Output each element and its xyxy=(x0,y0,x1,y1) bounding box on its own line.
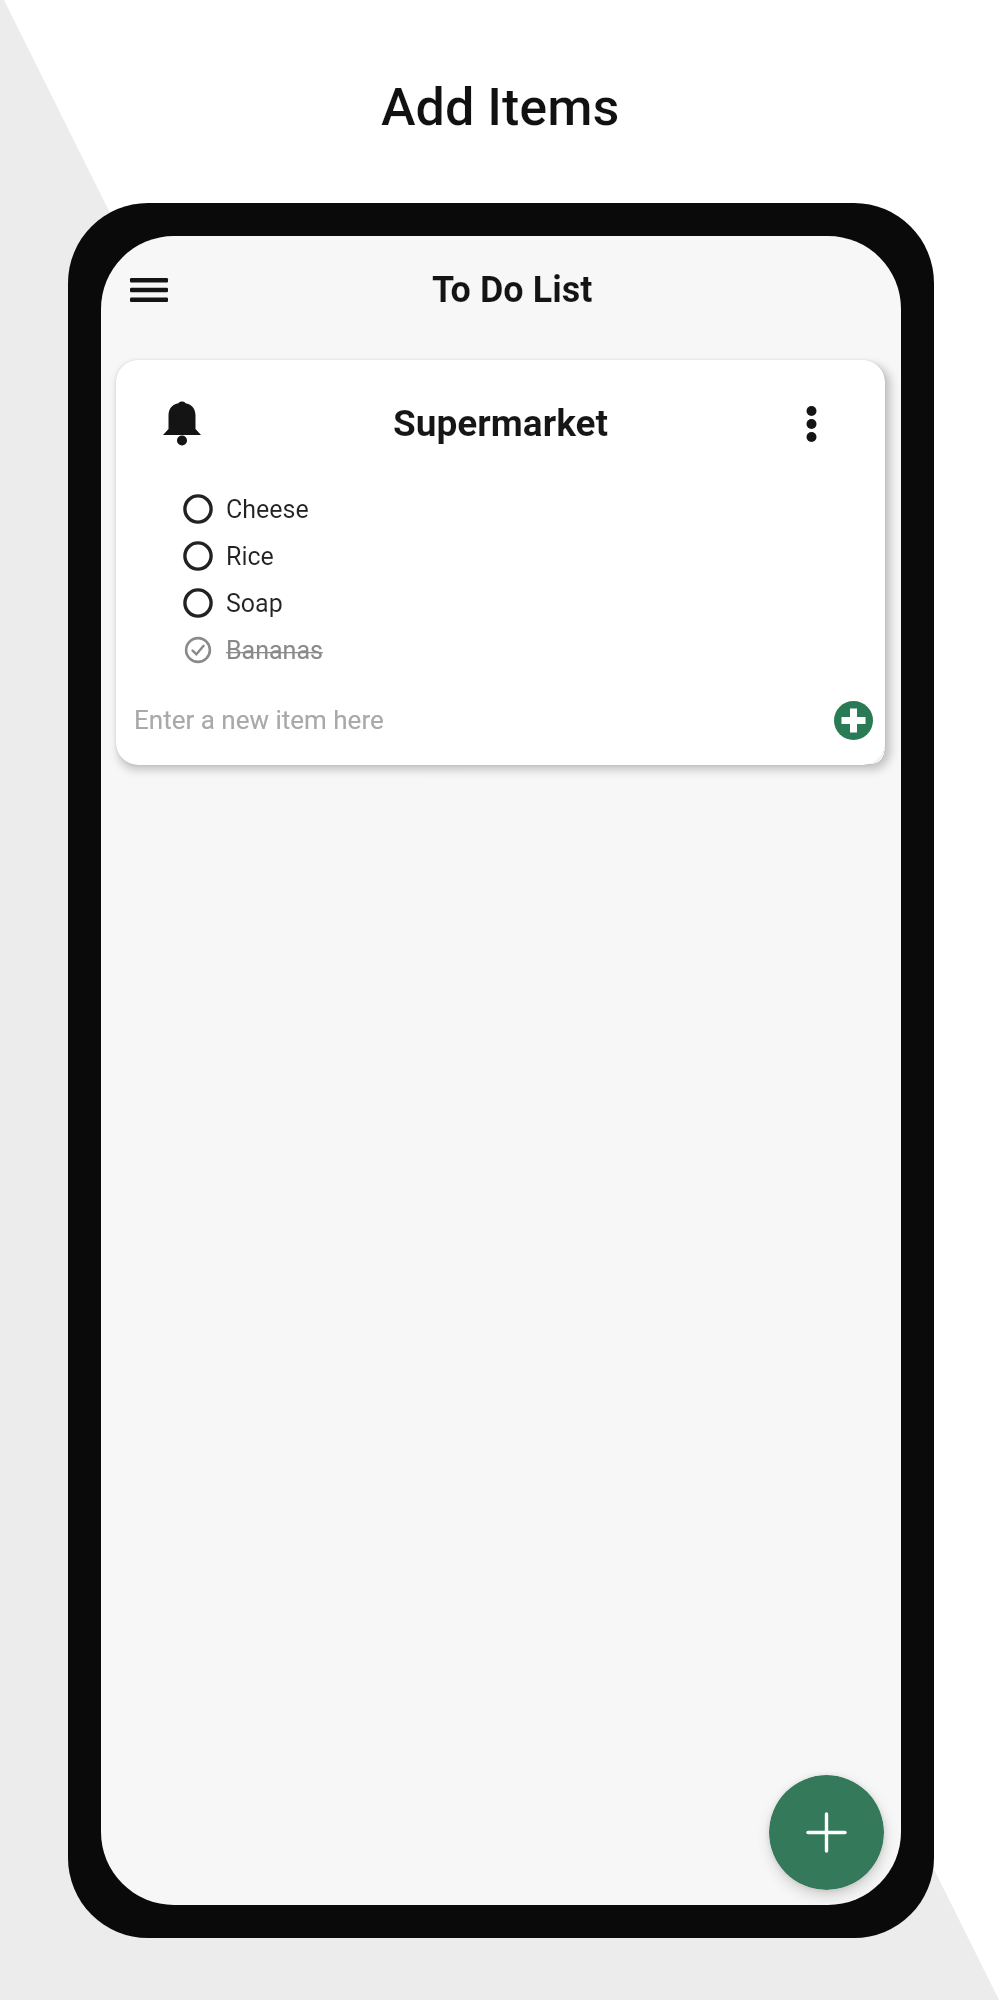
button[interactable]: Rice xyxy=(176,533,476,579)
staticText: Cheese xyxy=(226,495,309,524)
button[interactable]: Soap xyxy=(176,580,476,626)
staticText: Add Items xyxy=(381,77,620,138)
button[interactable] xyxy=(834,701,873,740)
staticText: Soap xyxy=(226,589,283,618)
staticText: Bananas xyxy=(226,636,323,665)
button[interactable] xyxy=(785,398,837,450)
staticText: Supermarket xyxy=(393,402,609,445)
staticText: Enter a new item here xyxy=(134,705,384,735)
button[interactable] xyxy=(156,398,208,450)
staticText: To Do List xyxy=(432,269,593,311)
staticText: Rice xyxy=(226,542,274,571)
button[interactable]: Enter a new item here xyxy=(126,690,876,750)
button[interactable]: Bananas xyxy=(176,627,476,673)
button[interactable] xyxy=(120,264,178,316)
button[interactable]: Cheese xyxy=(176,486,476,532)
button[interactable] xyxy=(769,1775,884,1890)
